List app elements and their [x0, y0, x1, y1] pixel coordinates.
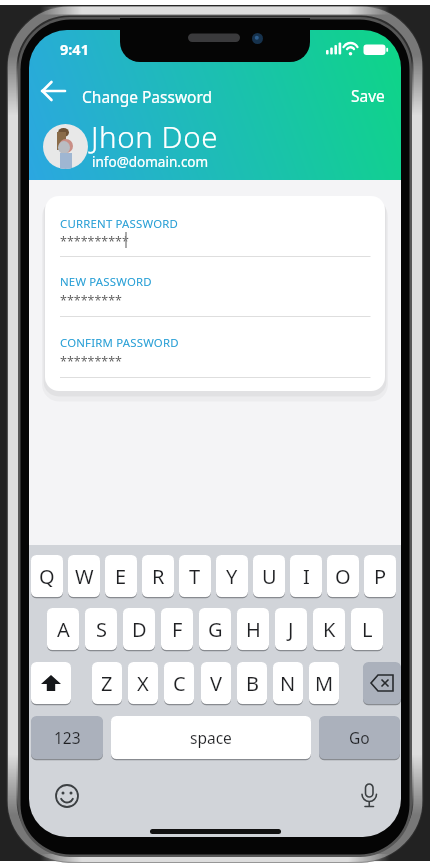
button[interactable]: B	[237, 662, 267, 704]
staticText: M	[315, 670, 334, 697]
staticText: W	[75, 563, 94, 590]
button[interactable]: R	[142, 555, 174, 597]
button[interactable]	[363, 662, 401, 704]
staticText: S	[96, 616, 107, 643]
staticText: NEW PASSWORD	[60, 274, 152, 290]
button[interactable]	[35, 74, 73, 108]
button[interactable]: W	[68, 555, 100, 597]
staticText: G	[208, 616, 223, 643]
button[interactable]: V	[201, 662, 231, 704]
button[interactable]: T	[179, 555, 211, 597]
staticText: J	[288, 616, 294, 643]
staticText: Save	[351, 85, 385, 106]
staticText: T	[189, 563, 201, 590]
button[interactable]: C	[164, 662, 194, 704]
staticText: R	[152, 563, 165, 590]
staticText: P	[374, 563, 387, 590]
button[interactable]: L	[351, 608, 383, 650]
button[interactable]: X	[128, 662, 158, 704]
button[interactable]: H	[237, 608, 269, 650]
staticText: C	[173, 670, 186, 697]
button[interactable]: 123	[31, 716, 103, 759]
button[interactable]: N	[273, 662, 303, 704]
staticText: CURRENT PASSWORD	[60, 216, 179, 232]
staticText: info@domain.com	[92, 153, 209, 171]
button[interactable]: Z	[92, 662, 122, 704]
button[interactable]: G	[199, 608, 231, 650]
staticText: A	[57, 616, 70, 643]
button[interactable]: E	[105, 555, 137, 597]
button[interactable]: Q	[31, 555, 63, 597]
staticText: L	[362, 616, 373, 643]
button[interactable]: F	[161, 608, 193, 650]
staticText: *********	[60, 353, 122, 370]
button[interactable]: U	[253, 555, 285, 597]
staticText: V	[210, 670, 222, 697]
staticText: D	[132, 616, 147, 643]
staticText: *********	[60, 292, 122, 309]
button[interactable]: Go	[319, 716, 400, 759]
staticText: O	[335, 563, 351, 590]
button[interactable]: Y	[216, 555, 248, 597]
staticText: H	[246, 616, 261, 643]
staticText: X	[137, 670, 149, 697]
button[interactable]: Save	[344, 80, 392, 110]
button[interactable]: O	[327, 555, 359, 597]
button[interactable]: K	[313, 608, 345, 650]
staticText: space	[190, 727, 232, 748]
staticText: Y	[226, 563, 238, 590]
button[interactable]: M	[309, 662, 339, 704]
staticText: B	[246, 670, 259, 697]
staticText: N	[280, 670, 296, 697]
staticText: U	[262, 563, 277, 590]
staticText: I	[303, 563, 310, 590]
staticText: Change Password	[82, 86, 213, 107]
button[interactable]	[31, 662, 71, 704]
button[interactable]: space	[111, 716, 311, 759]
staticText: Q	[39, 563, 55, 590]
staticText: 9:41	[60, 39, 89, 59]
button[interactable]: I	[290, 555, 322, 597]
button[interactable]: A	[47, 608, 79, 650]
button[interactable]: J	[275, 608, 307, 650]
staticText: **********	[60, 233, 129, 250]
staticText: K	[323, 616, 336, 643]
staticText: E	[115, 563, 127, 590]
staticText: Go	[349, 727, 370, 748]
button[interactable]: D	[123, 608, 155, 650]
staticText: 123	[54, 727, 81, 748]
staticText: Z	[101, 670, 113, 697]
staticText: Jhon Doe	[91, 116, 219, 156]
staticText: F	[172, 616, 183, 643]
button[interactable]: S	[85, 608, 117, 650]
staticText: CONFIRM PASSWORD	[60, 335, 179, 351]
button[interactable]: P	[364, 555, 396, 597]
